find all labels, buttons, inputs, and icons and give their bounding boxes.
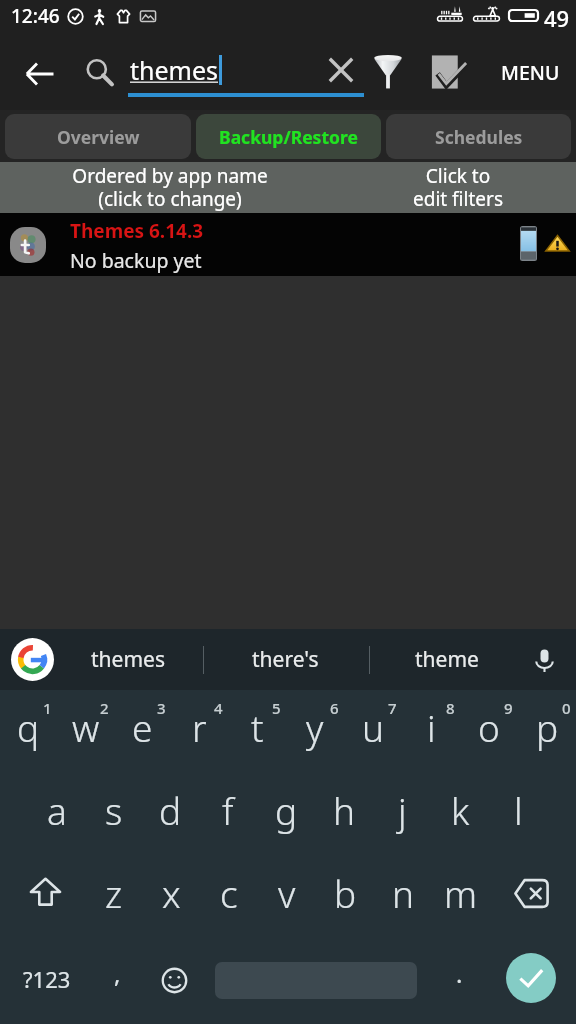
- staticText: 12:46: [11, 3, 60, 29]
- staticText: o: [478, 702, 500, 752]
- staticText: y: [306, 702, 324, 752]
- staticText: v: [278, 868, 296, 918]
- staticText: themes: [130, 53, 219, 87]
- staticText: r: [192, 702, 207, 752]
- staticText: themes: [91, 645, 165, 674]
- staticText: 3: [157, 698, 166, 718]
- staticText: f: [222, 785, 234, 835]
- staticText: k: [451, 785, 470, 835]
- button[interactable]: Back: [12, 46, 68, 102]
- button[interactable]: ,: [90, 940, 144, 1024]
- button[interactable]: l: [489, 773, 547, 856]
- staticText: 0: [562, 698, 571, 718]
- button[interactable]: Shift: [0, 856, 85, 940]
- button[interactable]: u: [344, 690, 402, 773]
- staticText: 49: [544, 3, 570, 33]
- staticText: q: [17, 702, 40, 752]
- staticText: Overview: [57, 125, 140, 149]
- staticText: there's: [252, 645, 319, 674]
- button[interactable]: r: [171, 690, 228, 773]
- button[interactable]: d: [142, 773, 199, 856]
- button[interactable]: Filter: [361, 43, 415, 97]
- button[interactable]: Select all: [422, 45, 476, 99]
- staticText: Click to edit filters: [413, 163, 503, 212]
- staticText: Schedules: [435, 125, 523, 149]
- staticText: .: [456, 957, 463, 990]
- staticText: ,: [114, 957, 121, 990]
- button[interactable]: q: [0, 690, 57, 773]
- button[interactable]: x: [142, 856, 200, 940]
- button[interactable]: MENU: [493, 49, 568, 96]
- staticText: z: [105, 868, 123, 918]
- staticText: g: [275, 785, 298, 835]
- button[interactable]: themes: [58, 629, 197, 690]
- staticText: u: [362, 702, 385, 752]
- button[interactable]: g: [257, 773, 315, 856]
- staticText: e: [132, 702, 153, 752]
- staticText: No backup yet: [70, 247, 202, 274]
- staticText: w: [72, 702, 100, 752]
- button[interactable]: p: [518, 690, 576, 773]
- staticText: h: [333, 785, 356, 835]
- button[interactable]: [206, 940, 426, 1024]
- staticText: i: [427, 702, 436, 752]
- button[interactable]: theme: [370, 629, 523, 690]
- staticText: x: [162, 868, 181, 918]
- staticText: 1: [43, 698, 52, 718]
- staticText: p: [536, 702, 559, 752]
- staticText: MENU: [501, 59, 560, 86]
- button[interactable]: c: [200, 856, 258, 940]
- button[interactable]: f: [199, 773, 257, 856]
- staticText: 4: [214, 698, 223, 718]
- staticText: j: [398, 785, 407, 835]
- button[interactable]: Emoji: [146, 940, 202, 1024]
- staticText: Backup/Restore: [219, 125, 358, 149]
- button[interactable]: Backup/Restore: [196, 114, 381, 159]
- staticText: l: [514, 785, 523, 835]
- staticText: n: [392, 868, 415, 918]
- staticText: d: [159, 785, 182, 835]
- button[interactable]: Voice input: [518, 634, 570, 686]
- button[interactable]: n: [374, 856, 432, 940]
- button[interactable]: Backspace: [490, 856, 576, 940]
- button[interactable]: Click to edit filters: [340, 162, 576, 213]
- staticText: Themes 6.14.3: [70, 218, 204, 244]
- button[interactable]: Enter: [488, 940, 572, 1024]
- button[interactable]: m: [432, 856, 490, 940]
- button[interactable]: z: [85, 856, 142, 940]
- button[interactable]: .: [432, 940, 486, 1024]
- button[interactable]: Themes 6.14.3: [0, 213, 576, 276]
- button[interactable]: b: [316, 856, 374, 940]
- button[interactable]: a: [28, 773, 85, 856]
- staticText: 5: [272, 698, 281, 718]
- button[interactable]: w: [57, 690, 114, 773]
- button[interactable]: s: [85, 773, 142, 856]
- button[interactable]: there's: [203, 629, 368, 690]
- button[interactable]: k: [431, 773, 489, 856]
- button[interactable]: ?123: [4, 940, 90, 1024]
- button[interactable]: Overview: [5, 114, 191, 159]
- button[interactable]: t: [228, 690, 286, 773]
- button[interactable]: i: [402, 690, 460, 773]
- staticText: t: [251, 702, 264, 752]
- staticText: 9: [504, 698, 513, 718]
- button[interactable]: Clear search: [314, 43, 368, 97]
- button[interactable]: Ordered by app name (click to change): [0, 162, 340, 213]
- staticText: m: [444, 868, 478, 918]
- staticText: 2: [100, 698, 109, 718]
- staticText: ?123: [23, 964, 71, 994]
- staticText: theme: [415, 645, 479, 674]
- button[interactable]: h: [315, 773, 373, 856]
- button[interactable]: y: [286, 690, 344, 773]
- staticText: c: [220, 868, 238, 918]
- button[interactable]: o: [460, 690, 518, 773]
- staticText: 7: [388, 698, 397, 718]
- button[interactable]: e: [114, 690, 171, 773]
- staticText: 8: [446, 698, 455, 718]
- staticText: b: [334, 868, 357, 918]
- staticText: s: [105, 785, 123, 835]
- button[interactable]: Schedules: [386, 114, 571, 159]
- button[interactable]: j: [373, 773, 431, 856]
- staticText: Ordered by app name (click to change): [72, 163, 268, 212]
- button[interactable]: v: [258, 856, 316, 940]
